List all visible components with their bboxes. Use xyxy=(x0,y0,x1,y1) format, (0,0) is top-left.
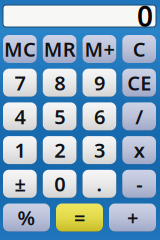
staticText: - xyxy=(136,170,142,197)
button[interactable]: / xyxy=(122,102,156,130)
button[interactable]: MC xyxy=(3,35,37,63)
staticText: 6 xyxy=(94,103,105,130)
staticText: 5 xyxy=(54,103,65,130)
staticText: MR xyxy=(44,36,76,62)
button[interactable]: % xyxy=(3,203,50,231)
staticText: 8 xyxy=(54,69,65,96)
staticText: . xyxy=(96,170,102,197)
staticText: 0 xyxy=(137,0,153,35)
staticText: 1 xyxy=(14,137,25,163)
staticText: 0 xyxy=(54,170,65,197)
button[interactable]: - xyxy=(122,170,156,198)
staticText: / xyxy=(135,103,143,130)
button[interactable]: + xyxy=(109,203,156,231)
staticText: CE xyxy=(127,69,151,96)
button[interactable]: 5 xyxy=(43,102,77,130)
button[interactable]: 2 xyxy=(43,136,77,164)
button[interactable]: 4 xyxy=(3,102,37,130)
button[interactable]: CE xyxy=(122,69,156,97)
staticText: M+ xyxy=(84,36,114,62)
button[interactable]: 3 xyxy=(82,136,116,164)
staticText: 4 xyxy=(14,103,25,130)
staticText: 2 xyxy=(54,137,65,163)
button[interactable]: . xyxy=(82,170,116,198)
staticText: % xyxy=(17,204,35,231)
staticText: 3 xyxy=(94,137,105,163)
staticText: x xyxy=(134,137,145,163)
button[interactable]: 8 xyxy=(43,69,77,97)
button[interactable]: 9 xyxy=(82,69,116,97)
staticText: + xyxy=(127,204,138,231)
button[interactable]: 6 xyxy=(82,102,116,130)
staticText: 7 xyxy=(14,69,25,96)
button[interactable]: C xyxy=(122,35,156,63)
button[interactable]: x xyxy=(122,136,156,164)
staticText: ± xyxy=(14,170,25,197)
staticText: MC xyxy=(4,36,36,62)
button[interactable]: ± xyxy=(3,170,37,198)
button[interactable]: M+ xyxy=(82,35,116,63)
staticText: C xyxy=(133,36,146,62)
button[interactable]: 1 xyxy=(3,136,37,164)
button[interactable]: 0 xyxy=(43,170,77,198)
button[interactable]: = xyxy=(56,203,103,231)
staticText: 9 xyxy=(94,69,105,96)
button[interactable]: 7 xyxy=(3,69,37,97)
staticText: = xyxy=(74,204,85,231)
button[interactable]: MR xyxy=(43,35,77,63)
